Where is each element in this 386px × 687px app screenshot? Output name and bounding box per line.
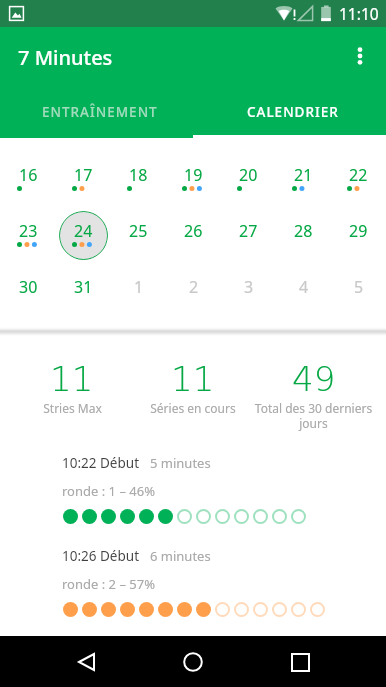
button[interactable]: 23 (0, 200, 56, 256)
button[interactable]: 2 (166, 256, 221, 312)
button[interactable]: 28 (276, 200, 331, 256)
staticText: 20 (239, 164, 258, 186)
staticText: 17 (74, 164, 93, 186)
button[interactable]: Recent apps (279, 640, 323, 684)
staticText: 26 (184, 220, 203, 242)
staticText: 22 (349, 164, 368, 186)
staticText: 24 (74, 220, 93, 242)
staticText: 10:26 Début (62, 547, 140, 565)
staticText: Séries en cours (150, 400, 236, 416)
staticText: 3 (244, 276, 254, 298)
staticText: 1 (134, 276, 144, 298)
staticText: ronde : 1 – 46% (62, 482, 155, 500)
staticText: 11:10 (339, 3, 379, 24)
staticText: ronde : 2 – 57% (62, 575, 155, 593)
staticText: 23 (19, 220, 38, 242)
staticText: 19 (184, 164, 203, 186)
button[interactable]: 20 (221, 144, 276, 200)
button[interactable]: 30 (0, 256, 56, 312)
staticText: 16 (19, 164, 38, 186)
staticText: 30 (19, 276, 38, 298)
button[interactable]: Back (64, 640, 108, 684)
staticText: 5 (354, 276, 364, 298)
staticText: Stries Max (43, 400, 102, 416)
button[interactable]: 25 (111, 200, 166, 256)
button[interactable]: 27 (221, 200, 276, 256)
button[interactable]: 10:26 Début (0, 534, 386, 627)
staticText: 10:22 Début (62, 454, 140, 472)
button[interactable]: 3 (221, 256, 276, 312)
button[interactable]: 24 (56, 200, 111, 256)
button[interactable]: 5 (331, 256, 386, 312)
button[interactable]: ENTRAÎNEMENT (0, 84, 193, 138)
staticText: 31 (74, 276, 93, 298)
staticText: 7 Minutes (18, 44, 113, 71)
button[interactable]: More options (336, 32, 384, 80)
staticText: 29 (349, 220, 368, 242)
button[interactable]: 10:22 Début (0, 441, 386, 534)
staticText: 27 (239, 220, 258, 242)
button[interactable]: 18 (111, 144, 166, 200)
staticText: 11 (171, 359, 215, 399)
button[interactable]: 4 (276, 256, 331, 312)
staticText: 28 (294, 220, 313, 242)
button[interactable]: 29 (331, 200, 386, 256)
staticText: 4 (299, 276, 309, 298)
staticText: CALENDRIER (247, 103, 339, 121)
button[interactable]: 19 (166, 144, 221, 200)
staticText: 25 (129, 220, 148, 242)
staticText: Total des 30 derniers jours (253, 400, 374, 431)
staticText: 49 (292, 359, 336, 399)
button[interactable]: 21 (276, 144, 331, 200)
button[interactable]: 22 (331, 144, 386, 200)
button[interactable]: 16 (0, 144, 56, 200)
staticText: 6 minutes (150, 547, 211, 565)
button[interactable]: 31 (56, 256, 111, 312)
staticText: 18 (129, 164, 148, 186)
button[interactable]: Home (171, 640, 215, 684)
staticText: 21 (294, 164, 313, 186)
staticText: ENTRAÎNEMENT (42, 103, 158, 121)
staticText: 11 (50, 359, 94, 399)
button[interactable]: CALENDRIER (193, 84, 386, 138)
button[interactable]: 17 (56, 144, 111, 200)
staticText: 2 (189, 276, 199, 298)
staticText: 5 minutes (150, 454, 211, 472)
button[interactable]: 26 (166, 200, 221, 256)
button[interactable]: 1 (111, 256, 166, 312)
